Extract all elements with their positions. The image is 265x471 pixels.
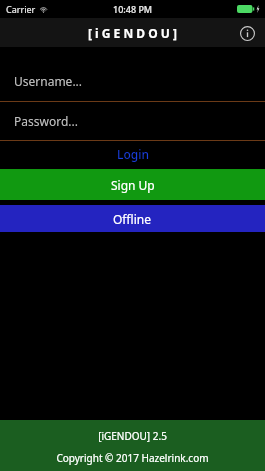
button[interactable]: Info <box>237 23 257 43</box>
staticText: 10:48 PM <box>113 3 153 15</box>
button[interactable]: Offline <box>0 205 265 232</box>
staticText: [iGENDOU] 2.5 <box>98 429 167 443</box>
staticText: Password... <box>14 113 78 129</box>
button[interactable]: Login <box>0 141 265 167</box>
staticText: Sign Up <box>111 177 155 193</box>
button[interactable]: Username... <box>0 61 265 101</box>
button[interactable]: Sign Up <box>0 169 265 200</box>
staticText: Carrier <box>6 3 36 15</box>
staticText: Copyright © 2017 Hazelrink.com <box>56 451 209 465</box>
staticText: Login <box>117 146 149 162</box>
staticText: [ i G E N D O U ] <box>88 25 178 41</box>
staticText: Username... <box>14 73 83 89</box>
staticText: Offline <box>113 211 152 227</box>
button[interactable]: Password... <box>0 102 265 140</box>
